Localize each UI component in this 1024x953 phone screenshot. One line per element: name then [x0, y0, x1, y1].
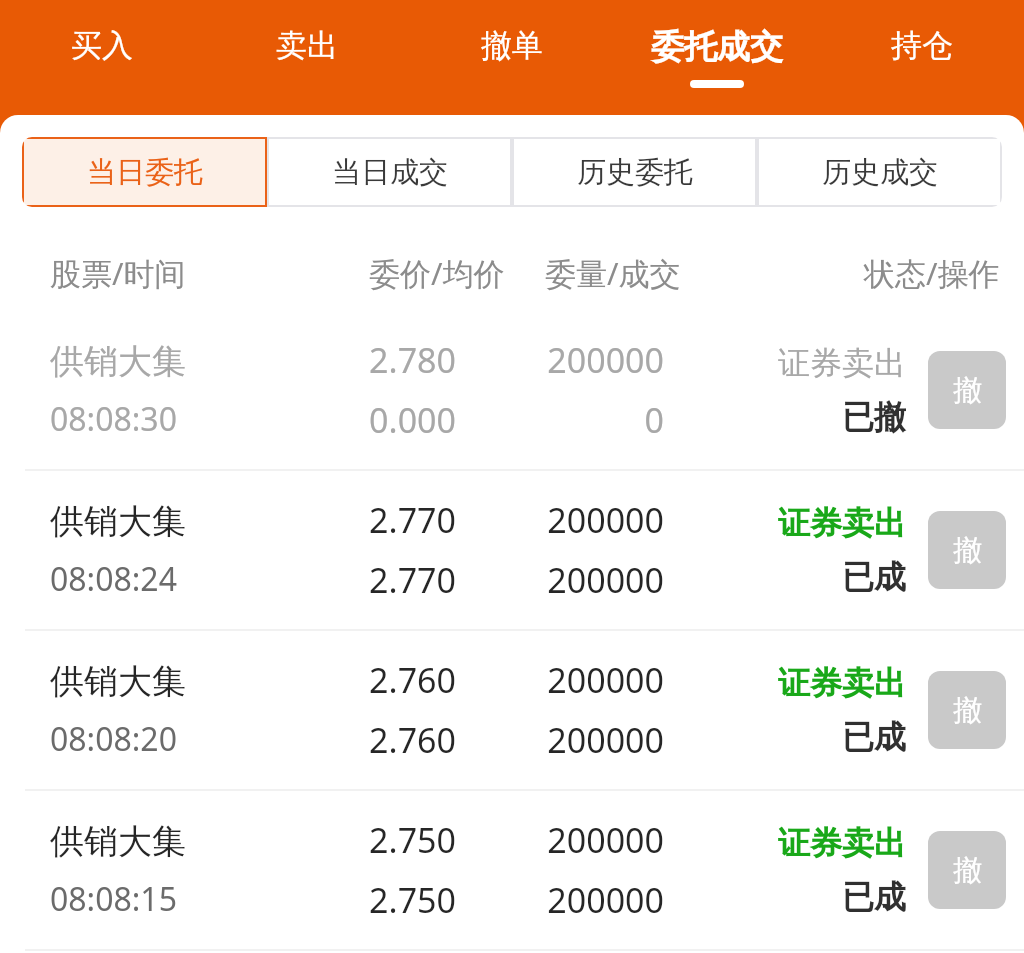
staticText: 委量/成交 [545, 252, 681, 294]
staticText: 撤 [953, 852, 982, 889]
button[interactable]: 供销大集 [0, 791, 1024, 949]
button[interactable]: 买入 [0, 0, 204, 115]
staticText: 历史委托 [577, 154, 693, 191]
staticText: 撤 [953, 692, 982, 729]
staticText: 2.770 [369, 557, 456, 603]
staticText: 卖出 [276, 26, 338, 65]
staticText: 200000 [547, 657, 664, 703]
staticText: 200000 [547, 497, 664, 543]
staticText: 撤 [953, 532, 982, 569]
button[interactable]: 持仓 [819, 0, 1024, 115]
staticText: 2.750 [369, 877, 456, 923]
button[interactable]: 撤单 [928, 671, 1006, 749]
button[interactable]: 撤单 [409, 0, 614, 115]
staticText: 撤 [953, 372, 982, 409]
staticText: 已成 [842, 717, 906, 757]
button[interactable]: 撤单 [928, 511, 1006, 589]
staticText: 200000 [547, 717, 664, 763]
staticText: 供销大集 [50, 340, 186, 383]
button[interactable]: 委托成交 [614, 0, 819, 115]
staticText: 委托成交 [651, 26, 783, 68]
staticText: 08:08:24 [50, 557, 177, 601]
button[interactable]: 当日委托 [22, 137, 267, 207]
staticText: 已成 [842, 557, 906, 597]
staticText: 供销大集 [50, 660, 186, 703]
staticText: 当日委托 [87, 154, 203, 191]
button[interactable]: 撤单 [928, 831, 1006, 909]
staticText: 供销大集 [50, 820, 186, 863]
staticText: 证券卖出 [778, 823, 906, 863]
button[interactable]: 历史委托 [512, 137, 757, 207]
button[interactable]: 供销大集 [0, 631, 1024, 789]
staticText: 2.760 [369, 717, 456, 763]
staticText: 2.770 [369, 497, 456, 543]
staticText: 08:08:20 [50, 717, 177, 761]
staticText: 证券卖出 [778, 663, 906, 703]
staticText: 供销大集 [50, 500, 186, 543]
staticText: 委价/均价 [369, 252, 505, 294]
staticText: 证券卖出 [778, 503, 906, 543]
staticText: 历史成交 [822, 154, 938, 191]
staticText: 证券卖出 [778, 343, 906, 383]
staticText: 2.780 [369, 337, 456, 383]
staticText: 0.000 [369, 397, 456, 443]
staticText: 2.750 [369, 817, 456, 863]
staticText: 撤单 [481, 26, 543, 65]
staticText: 08:08:30 [50, 397, 177, 441]
staticText: 0 [644, 397, 664, 443]
staticText: 买入 [71, 26, 133, 65]
staticText: 已撤 [842, 397, 906, 437]
staticText: 当日成交 [332, 154, 448, 191]
staticText: 股票/时间 [50, 252, 186, 294]
button[interactable]: 供销大集 [0, 471, 1024, 629]
staticText: 持仓 [891, 26, 953, 65]
button[interactable]: 卖出 [204, 0, 409, 115]
staticText: 200000 [547, 817, 664, 863]
button[interactable]: 当日成交 [267, 137, 512, 207]
staticText: 2.760 [369, 657, 456, 703]
staticText: 200000 [547, 337, 664, 383]
button[interactable]: 撤单 [928, 351, 1006, 429]
staticText: 200000 [547, 877, 664, 923]
button[interactable]: 供销大集 [0, 311, 1024, 469]
staticText: 已成 [842, 877, 906, 917]
button[interactable]: 历史成交 [757, 137, 1002, 207]
staticText: 200000 [547, 557, 664, 603]
staticText: 08:08:15 [50, 877, 177, 921]
staticText: 状态/操作 [864, 252, 1000, 294]
